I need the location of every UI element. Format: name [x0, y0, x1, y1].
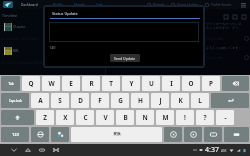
staticText: Status Update — [52, 11, 78, 16]
button[interactable]: N — [136, 110, 154, 125]
staticText: N — [142, 113, 148, 122]
button[interactable]: ! — [176, 110, 194, 125]
button[interactable]: Key — [211, 93, 249, 108]
staticText: - — [224, 113, 227, 122]
button[interactable]: CLaurie — [0, 23, 105, 46]
button[interactable]: - — [216, 110, 234, 125]
staticText: M — [162, 113, 169, 122]
staticText: D — [78, 96, 83, 105]
button[interactable]: U — [142, 76, 160, 91]
staticText: U — [149, 79, 154, 88]
button[interactable]: X — [56, 110, 74, 125]
button[interactable]: Dashboard — [21, 0, 38, 9]
staticText: Send Update — [114, 56, 136, 61]
button[interactable]: Y — [122, 76, 140, 91]
button[interactable]: Search — [74, 0, 85, 9]
staticText: Lists — [96, 3, 103, 7]
staticText: Tab — [8, 82, 14, 86]
staticText: 4:37 — [205, 145, 219, 155]
staticText: V — [103, 113, 108, 122]
button[interactable]: Caps Lock — [1, 93, 29, 108]
button[interactable]: Reply — [223, 14, 229, 20]
button[interactable]: H — [131, 93, 149, 108]
staticText: 変換 — [113, 132, 121, 137]
staticText: Status Update — [177, 3, 199, 7]
staticText: AM — [221, 148, 227, 153]
button[interactable]: F — [91, 93, 109, 108]
staticText: I — [170, 79, 173, 88]
staticText: BRI — [13, 48, 19, 53]
staticText: E — [69, 79, 73, 88]
button[interactable]: Retweet — [232, 14, 238, 20]
button[interactable]: J — [151, 93, 169, 108]
button[interactable]: Key — [222, 76, 249, 91]
staticText: S — [58, 96, 62, 105]
staticText: R — [89, 79, 94, 88]
staticText: 14:04 via web — [206, 37, 223, 41]
button[interactable]: Key — [204, 127, 222, 142]
staticText: Z — [43, 113, 47, 122]
button[interactable]: V — [96, 110, 114, 125]
button[interactable]: O — [182, 76, 200, 91]
staticText: というのですが、どう — [206, 26, 239, 30]
button[interactable]: A — [31, 93, 49, 108]
button[interactable]: Favorite — [241, 14, 247, 20]
staticText: Profile Search — [211, 3, 232, 7]
button[interactable]: Key — [51, 127, 69, 142]
button[interactable]: Key — [31, 127, 49, 142]
button[interactable]: BRI — [0, 47, 105, 70]
button[interactable]: Profile — [53, 0, 63, 9]
button[interactable]: Status Update — [171, 0, 199, 9]
staticText: Search — [74, 3, 85, 7]
button[interactable]: Key — [184, 127, 202, 142]
button[interactable]: Back — [8, 144, 20, 156]
staticText: Dashboard — [21, 3, 38, 7]
button[interactable]: Key — [164, 127, 182, 142]
staticText: K — [178, 96, 183, 105]
staticText: T — [109, 79, 113, 88]
button[interactable]: Lists — [96, 0, 103, 9]
button[interactable]: E — [62, 76, 80, 91]
button[interactable]: Profile Search — [205, 0, 232, 9]
button[interactable]: Home — [22, 144, 34, 156]
button[interactable]: G — [111, 93, 129, 108]
button[interactable]: 123 — [1, 127, 29, 142]
staticText: H — [138, 96, 143, 105]
button[interactable]: I — [162, 76, 180, 91]
button[interactable]: C — [76, 110, 94, 125]
button[interactable]: More options — [239, 1, 247, 9]
staticText: Timeline — [2, 13, 18, 18]
button[interactable]: P — [202, 76, 220, 91]
button[interactable]: 変換 — [71, 127, 162, 142]
staticText: Y — [129, 79, 134, 88]
button[interactable]: S — [51, 93, 69, 108]
button[interactable]: Q — [22, 76, 40, 91]
button[interactable]: D — [71, 93, 89, 108]
button[interactable]: Z — [36, 110, 54, 125]
staticText: CLaurie — [13, 24, 26, 29]
button[interactable]: Screenshot — [50, 144, 62, 156]
staticText: J — [159, 96, 162, 105]
staticText: C — [83, 113, 88, 122]
button[interactable]: Key — [224, 127, 249, 142]
button[interactable]: ? — [196, 110, 214, 125]
button[interactable]: Recents — [36, 144, 48, 156]
button[interactable]: Send Update — [110, 54, 140, 62]
button[interactable]: M — [156, 110, 174, 125]
staticText: 123 — [12, 132, 19, 137]
staticText: F — [98, 96, 102, 105]
staticText: P — [209, 79, 213, 88]
button[interactable]: R — [82, 76, 100, 91]
button[interactable]: Key — [1, 110, 34, 125]
button[interactable]: L — [191, 93, 209, 108]
button[interactable]: K — [171, 93, 189, 108]
button[interactable]: T — [102, 76, 120, 91]
button[interactable]: Tab — [1, 76, 20, 91]
button[interactable] — [49, 22, 199, 42]
button[interactable]: App logo — [3, 1, 13, 8]
button[interactable]: B — [116, 110, 134, 125]
staticText: L — [198, 96, 202, 105]
staticText: B — [123, 113, 128, 122]
button[interactable]: W — [42, 76, 60, 91]
button[interactable]: Refresh — [147, 0, 165, 9]
